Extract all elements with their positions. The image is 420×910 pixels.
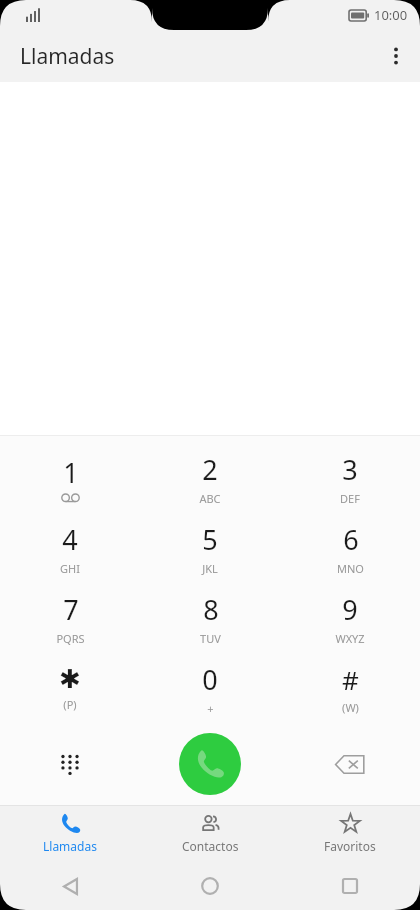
staticText: MNO bbox=[337, 561, 364, 576]
staticText: 6 bbox=[343, 521, 359, 558]
button[interactable]: Home bbox=[140, 862, 280, 910]
button[interactable]: 8 bbox=[140, 583, 280, 653]
button[interactable]: 2 bbox=[140, 443, 280, 513]
staticText: JKL bbox=[202, 561, 218, 576]
staticText: TUV bbox=[200, 631, 221, 646]
button[interactable]: Back bbox=[0, 862, 140, 910]
button[interactable]: Llamadas bbox=[0, 805, 140, 862]
button[interactable]: 3 bbox=[280, 443, 420, 513]
staticText: 8 bbox=[203, 591, 219, 628]
button[interactable]: Recents bbox=[280, 862, 420, 910]
staticText: 0 bbox=[202, 661, 218, 698]
staticText: Favoritos bbox=[324, 838, 376, 854]
staticText: DEF bbox=[340, 491, 360, 506]
staticText: ABC bbox=[199, 491, 221, 506]
button[interactable]: Favoritos bbox=[280, 805, 420, 862]
staticText: 5 bbox=[202, 521, 218, 558]
button[interactable]: 4 bbox=[0, 513, 140, 583]
staticText: # bbox=[342, 662, 359, 697]
staticText: GHI bbox=[60, 561, 80, 576]
button[interactable]: Delete bbox=[280, 723, 420, 805]
staticText: 4 bbox=[62, 521, 78, 558]
staticText: ✱ bbox=[59, 664, 81, 694]
staticText: (W) bbox=[342, 700, 359, 715]
button[interactable]: Call bbox=[179, 733, 241, 795]
button[interactable]: # bbox=[280, 653, 420, 723]
button[interactable]: 7 bbox=[0, 583, 140, 653]
button[interactable]: 9 bbox=[280, 583, 420, 653]
button[interactable]: Keypad bbox=[0, 723, 140, 805]
staticText: Llamadas bbox=[20, 42, 115, 71]
staticText: 9 bbox=[342, 591, 358, 628]
staticText: + bbox=[207, 701, 214, 716]
button[interactable]: 1 bbox=[0, 443, 140, 513]
button[interactable]: More options bbox=[372, 32, 420, 80]
staticText: Contactos bbox=[182, 838, 239, 854]
button[interactable]: ✱ bbox=[0, 653, 140, 723]
staticText: WXYZ bbox=[335, 631, 365, 646]
staticText: Llamadas bbox=[43, 838, 97, 854]
staticText: 3 bbox=[342, 451, 358, 488]
staticText: 10:00 bbox=[374, 6, 408, 24]
staticText: 1 bbox=[63, 454, 79, 491]
button[interactable]: 0 bbox=[140, 653, 280, 723]
staticText: (P) bbox=[63, 697, 77, 712]
staticText: PQRS bbox=[56, 631, 85, 646]
staticText: 7 bbox=[63, 591, 79, 628]
staticText: 2 bbox=[202, 451, 218, 488]
button[interactable]: 5 bbox=[140, 513, 280, 583]
button[interactable]: 6 bbox=[280, 513, 420, 583]
button[interactable]: Contactos bbox=[140, 805, 280, 862]
